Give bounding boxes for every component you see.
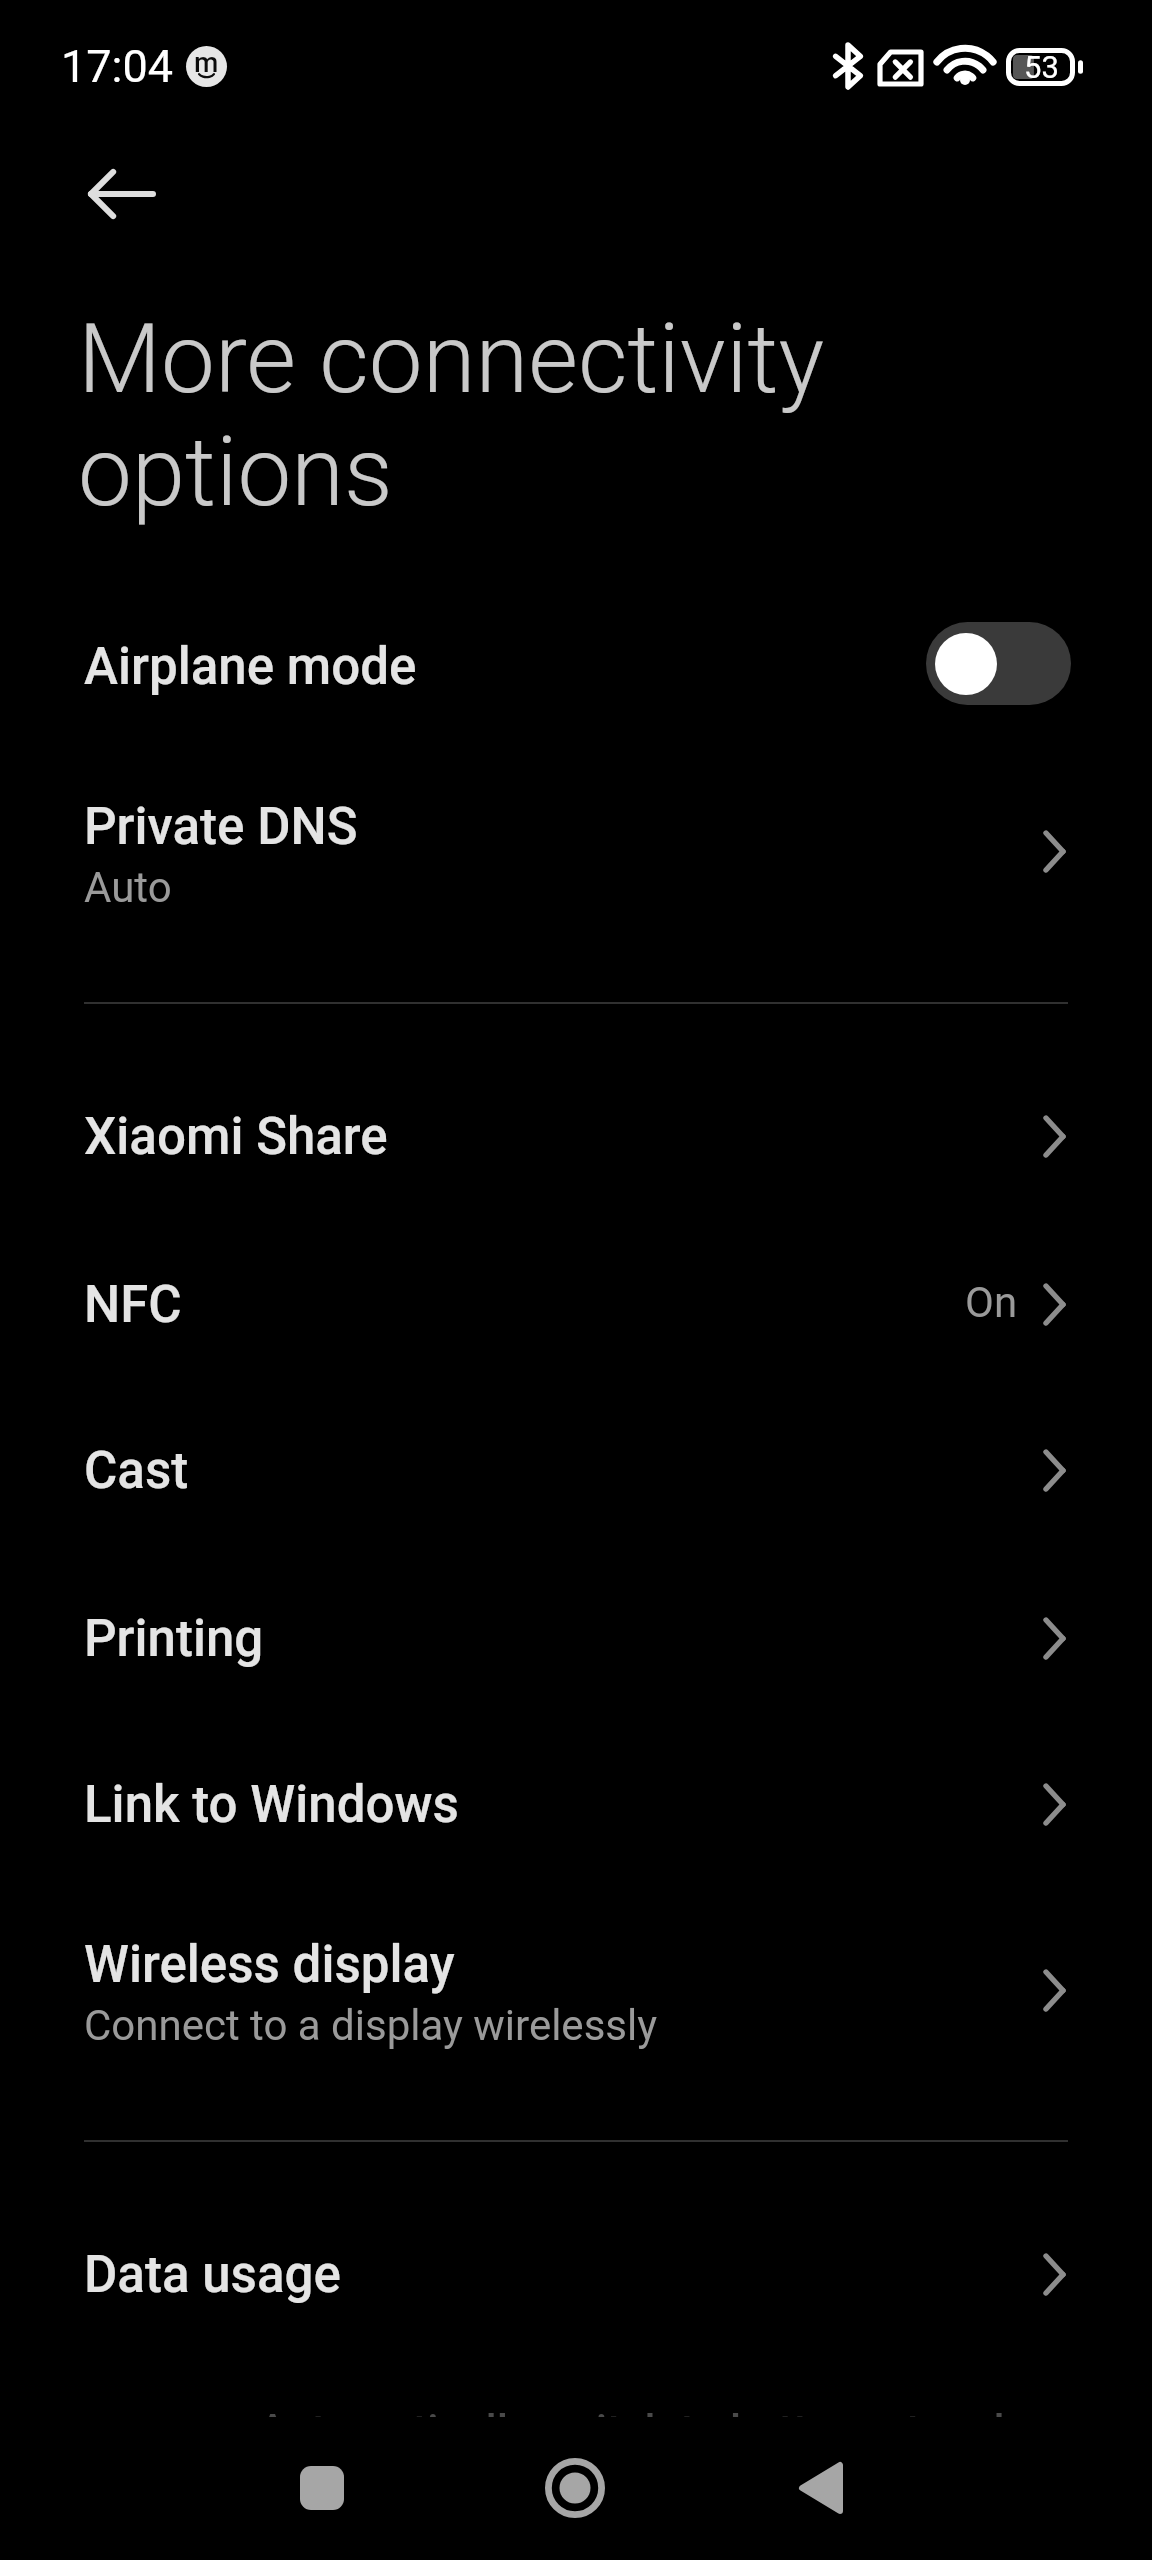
button[interactable]: NFC [0, 1237, 1152, 1353]
staticText: NFC [84, 1275, 182, 1335]
button[interactable]: Xiaomi Share [0, 1069, 1152, 1185]
staticText: 17:04 [61, 40, 174, 93]
button[interactable]: Automatically switch to better networks [0, 2408, 1152, 2420]
staticText: Xiaomi Share [84, 1107, 388, 1167]
staticText: More connectivity options [78, 303, 825, 529]
staticText: Cast [84, 1441, 189, 1501]
staticText: Private DNS [84, 797, 358, 857]
button[interactable]: Wireless display [0, 1897, 1152, 2077]
staticText: On [965, 1278, 1018, 1327]
button[interactable]: Airplane mode [0, 599, 1152, 715]
button[interactable]: Back [59, 147, 185, 241]
button[interactable]: Printing [0, 1571, 1152, 1687]
staticText: Auto [84, 863, 172, 912]
staticText: Airplane mode [84, 637, 417, 697]
staticText: Link to Windows [84, 1775, 459, 1835]
staticText: Wireless display [84, 1935, 455, 1995]
button[interactable]: Private DNS [0, 759, 1152, 939]
button[interactable]: Back [749, 2424, 893, 2552]
staticText: m [194, 46, 219, 79]
staticText: Data usage [84, 2245, 341, 2305]
button[interactable]: Link to Windows [0, 1737, 1152, 1853]
button[interactable]: Recent apps [250, 2424, 394, 2552]
staticText: Connect to a display wirelessly [84, 2001, 658, 2050]
button[interactable]: Cast [0, 1403, 1152, 1519]
button[interactable]: Data usage [0, 2207, 1152, 2323]
staticText: Automatically switch to better networks [258, 2408, 1040, 2417]
staticText: Printing [84, 1609, 264, 1669]
staticText: 53 [1024, 49, 1059, 85]
button[interactable]: Home [503, 2424, 647, 2552]
